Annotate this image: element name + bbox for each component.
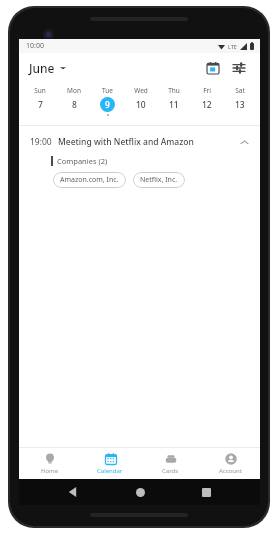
button[interactable]: 13 (223, 97, 256, 125)
staticText: 10 (136, 99, 146, 111)
staticText: 7 (38, 99, 43, 111)
staticText: Sun (34, 86, 46, 95)
button[interactable]: 8 (57, 97, 91, 125)
staticText: Tue (102, 86, 113, 95)
button[interactable]: 12 (190, 97, 223, 125)
button[interactable]: 10 (124, 97, 157, 125)
button[interactable]: Home (128, 480, 152, 504)
staticText: Calendar (97, 467, 123, 475)
button[interactable]: Netflix, Inc. (133, 172, 185, 188)
staticText: 10:00 (26, 41, 44, 51)
staticText: Sat (235, 86, 245, 95)
staticText: 19:00 (30, 136, 52, 148)
button[interactable]: 11 (157, 97, 190, 125)
staticText: Mon (67, 86, 81, 95)
button[interactable]: Home (19, 448, 80, 479)
staticText: Netflix, Inc. (140, 175, 178, 185)
staticText: Fri (203, 86, 211, 95)
staticText: Wed (134, 86, 148, 95)
staticText: 12 (202, 99, 212, 111)
button[interactable]: Cards (140, 448, 200, 479)
button[interactable]: Pick date (202, 57, 224, 79)
button[interactable]: Amazon.com, Inc. (53, 172, 126, 188)
staticText: Companies (2) (57, 156, 108, 166)
staticText: Thu (168, 86, 180, 95)
staticText: Home (41, 467, 59, 475)
staticText: 11 (169, 99, 179, 111)
staticText: Cards (162, 467, 179, 475)
staticText: Meeting with Netflix and Amazon (58, 136, 194, 148)
button[interactable]: Recent apps (194, 480, 218, 504)
button[interactable]: 9 (91, 97, 124, 125)
staticText: 8 (72, 99, 77, 111)
button[interactable]: Back (61, 480, 85, 504)
staticText: LTE (228, 43, 237, 50)
other: Collapse (237, 135, 251, 149)
button[interactable]: 19:00 (19, 133, 260, 151)
staticText: June (29, 60, 55, 76)
button[interactable]: June (29, 60, 66, 76)
staticText: Account (219, 467, 242, 475)
button[interactable]: Calendar (80, 448, 140, 479)
staticText: 9 (105, 99, 110, 111)
staticText: 13 (235, 99, 245, 111)
button[interactable]: Filter (228, 57, 250, 79)
button[interactable]: 7 (23, 97, 57, 125)
button[interactable]: Account (200, 448, 260, 479)
staticText: Amazon.com, Inc. (60, 175, 119, 185)
